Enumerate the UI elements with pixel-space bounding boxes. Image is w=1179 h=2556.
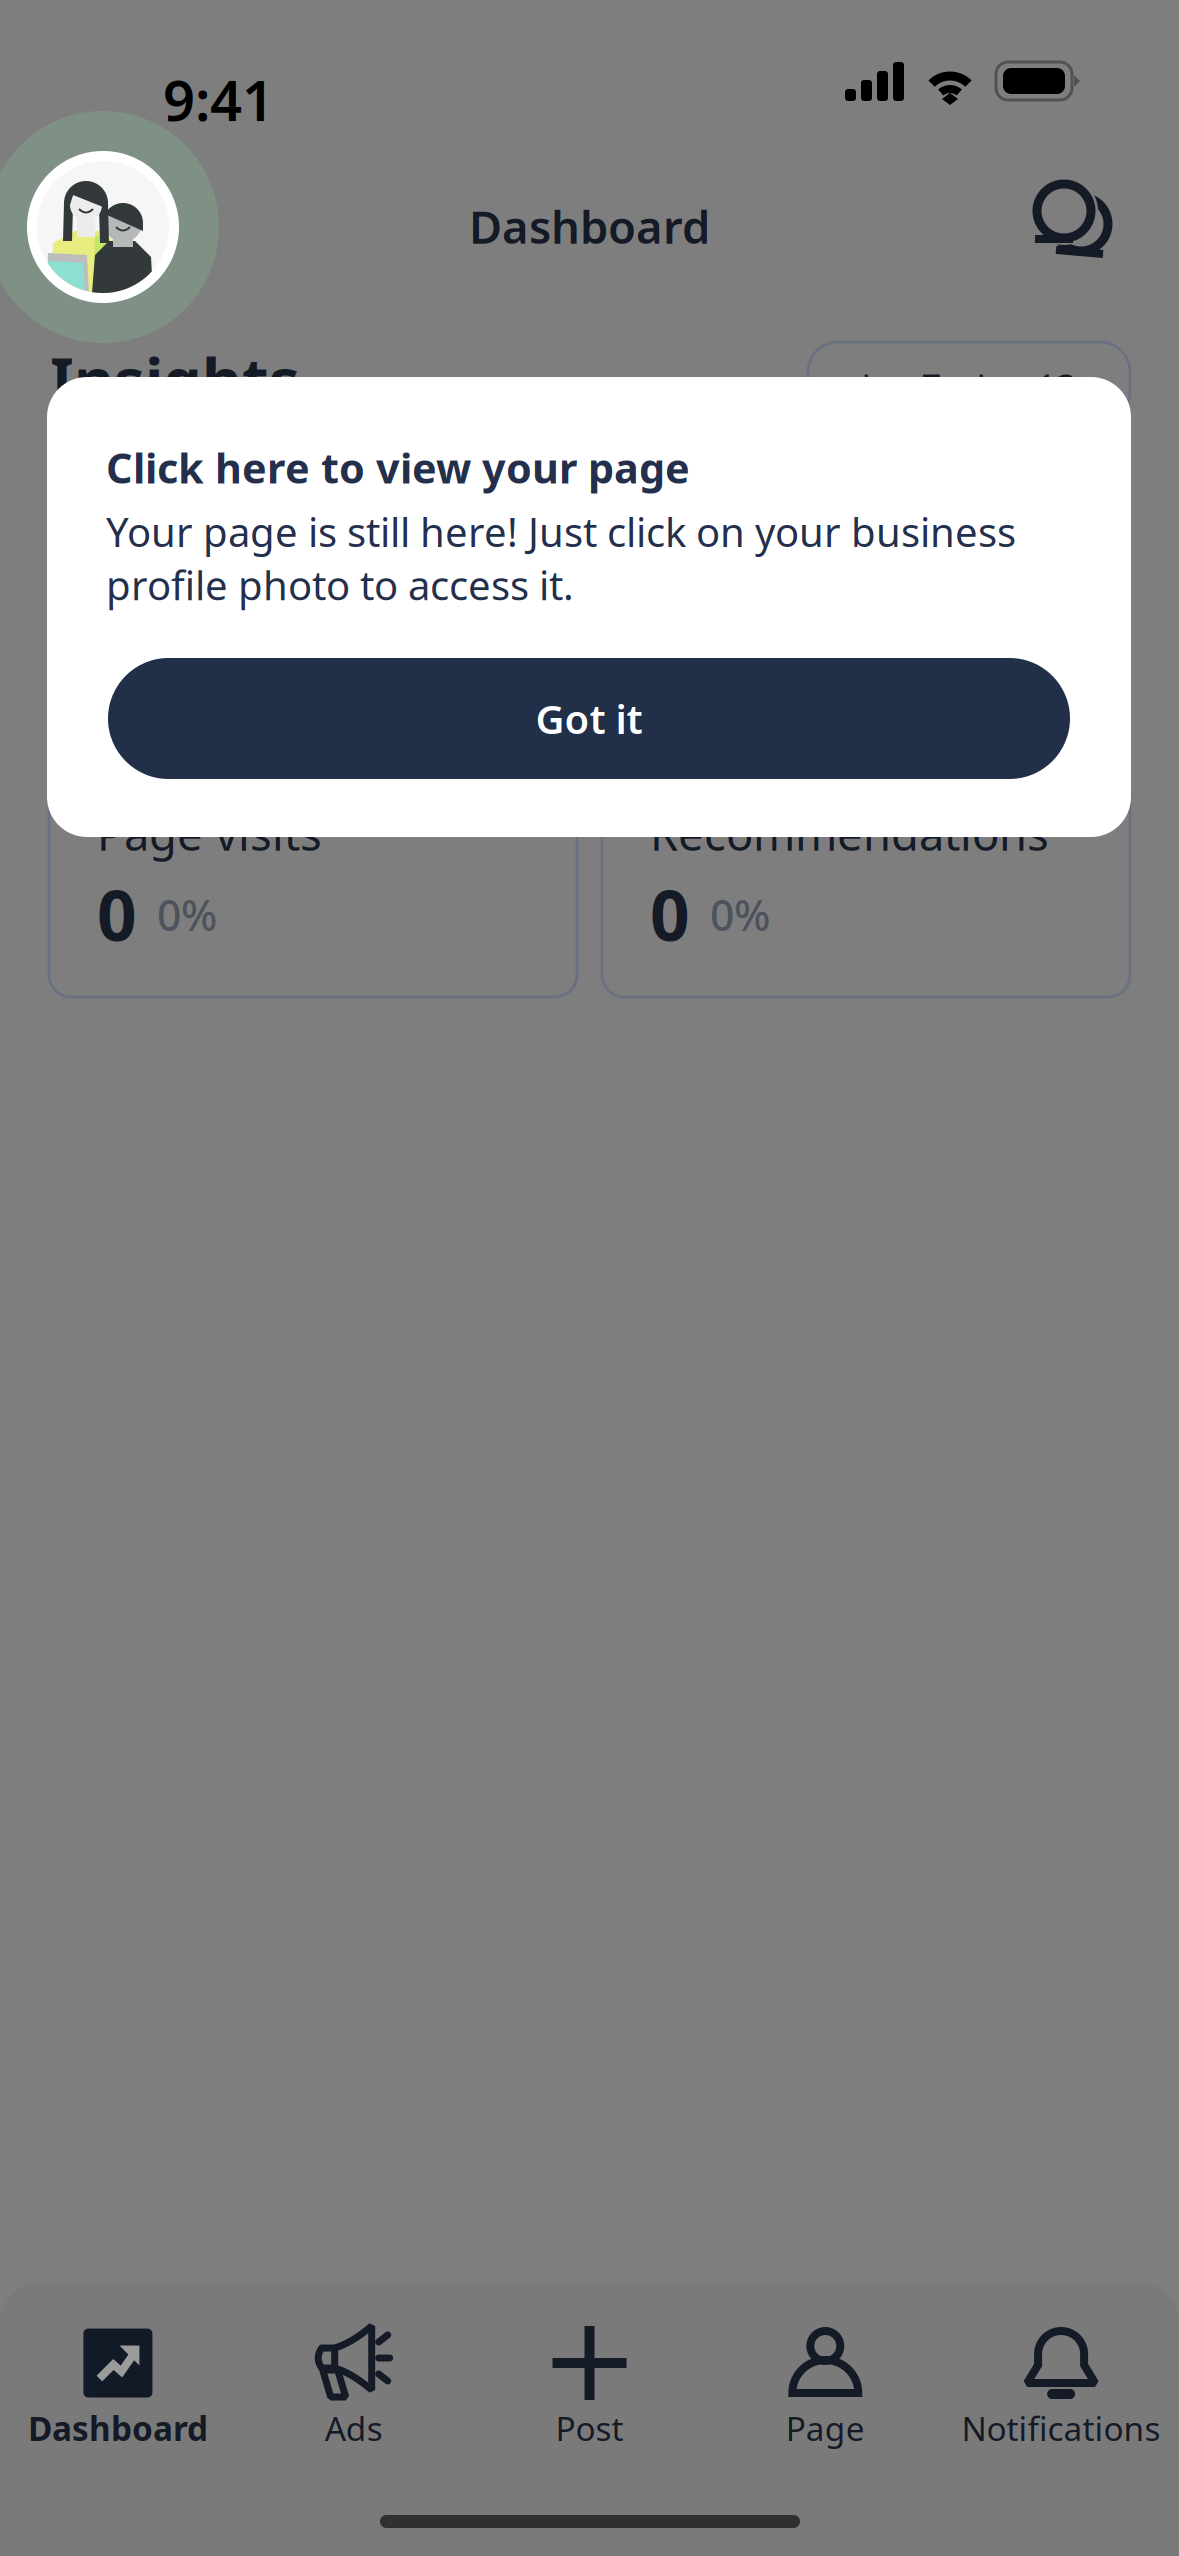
staticText: Jun 7 – Jun 13 (861, 363, 1076, 409)
button[interactable]: Dashboard (0, 2321, 236, 2450)
staticText: Insights (50, 338, 300, 419)
staticText: 0 (97, 868, 137, 960)
staticText: 9:41 (163, 62, 274, 136)
staticText: Ads (325, 2406, 383, 2450)
staticText: 0% (710, 886, 770, 943)
button[interactable]: Ads (236, 2321, 472, 2450)
button[interactable]: Messages (1013, 165, 1133, 285)
staticText: 0 (650, 868, 690, 960)
staticText: Notifications (962, 2406, 1161, 2450)
button[interactable]: Notifications (943, 2321, 1179, 2450)
button[interactable]: Post (472, 2321, 707, 2450)
staticText: Page visits (97, 803, 322, 863)
staticText: Post (555, 2406, 623, 2450)
staticText: Dashboard (28, 2406, 208, 2450)
staticText: Recommendations (650, 803, 1049, 863)
staticText: Click here to view your page (106, 440, 690, 495)
button[interactable]: Page (707, 2321, 943, 2450)
staticText: Got it (535, 692, 642, 745)
staticText: Page (786, 2406, 865, 2450)
button[interactable]: Got it (108, 658, 1070, 779)
button[interactable]: Jun 7 – Jun 13 (808, 342, 1130, 422)
staticText: Your page is still here! Just click on y… (106, 505, 1016, 611)
staticText: 0% (157, 886, 217, 943)
staticText: Dashboard (469, 196, 710, 256)
